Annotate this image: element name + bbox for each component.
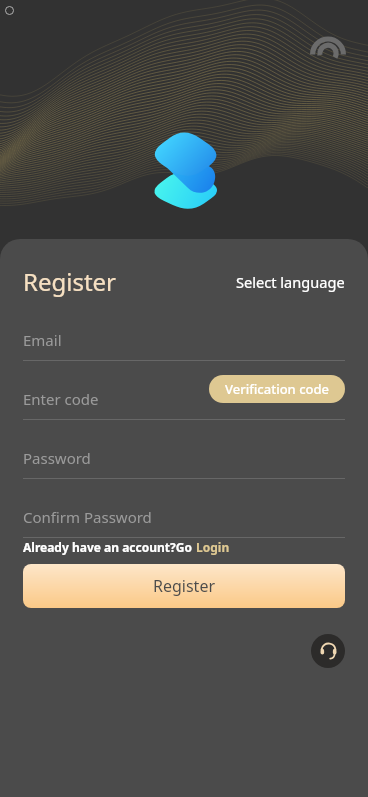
staticText: Password	[23, 448, 91, 468]
staticText: Enter code	[23, 389, 99, 409]
staticText: Already have an account?Go	[23, 539, 196, 555]
staticText: Select language	[236, 272, 345, 292]
button[interactable]: Support	[311, 634, 345, 668]
button[interactable]: Customer service	[310, 30, 346, 57]
staticText: Register	[23, 265, 117, 298]
staticText: Login	[196, 539, 230, 555]
staticText: Verification code	[225, 380, 329, 398]
button[interactable]: Register	[23, 265, 117, 298]
button[interactable]: Login	[196, 539, 230, 555]
staticText: Register	[153, 575, 216, 597]
button[interactable]: Verification code	[209, 375, 345, 403]
staticText: Email	[23, 330, 62, 350]
button[interactable]: Register	[23, 564, 345, 608]
staticText: Confirm Password	[23, 507, 152, 527]
button[interactable]: Select language	[236, 268, 345, 296]
